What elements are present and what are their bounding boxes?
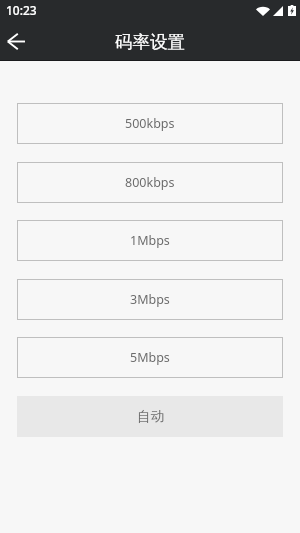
staticText: 1Mbps	[130, 232, 170, 249]
button[interactable]: 5Mbps	[17, 337, 283, 378]
button[interactable]: 3Mbps	[17, 279, 283, 320]
button[interactable]: 1Mbps	[17, 220, 283, 261]
staticText: 500kbps	[125, 115, 175, 132]
staticText: 3Mbps	[130, 291, 170, 308]
button[interactable]: Back	[2, 27, 30, 55]
staticText: 自动	[137, 408, 164, 425]
staticText: 5Mbps	[130, 349, 170, 366]
staticText: 10:23	[6, 2, 37, 18]
button[interactable]: 自动	[17, 396, 283, 437]
staticText: 800kbps	[125, 174, 175, 191]
staticText: 码率设置	[115, 31, 185, 53]
button[interactable]: 500kbps	[17, 103, 283, 144]
button[interactable]: 800kbps	[17, 162, 283, 203]
